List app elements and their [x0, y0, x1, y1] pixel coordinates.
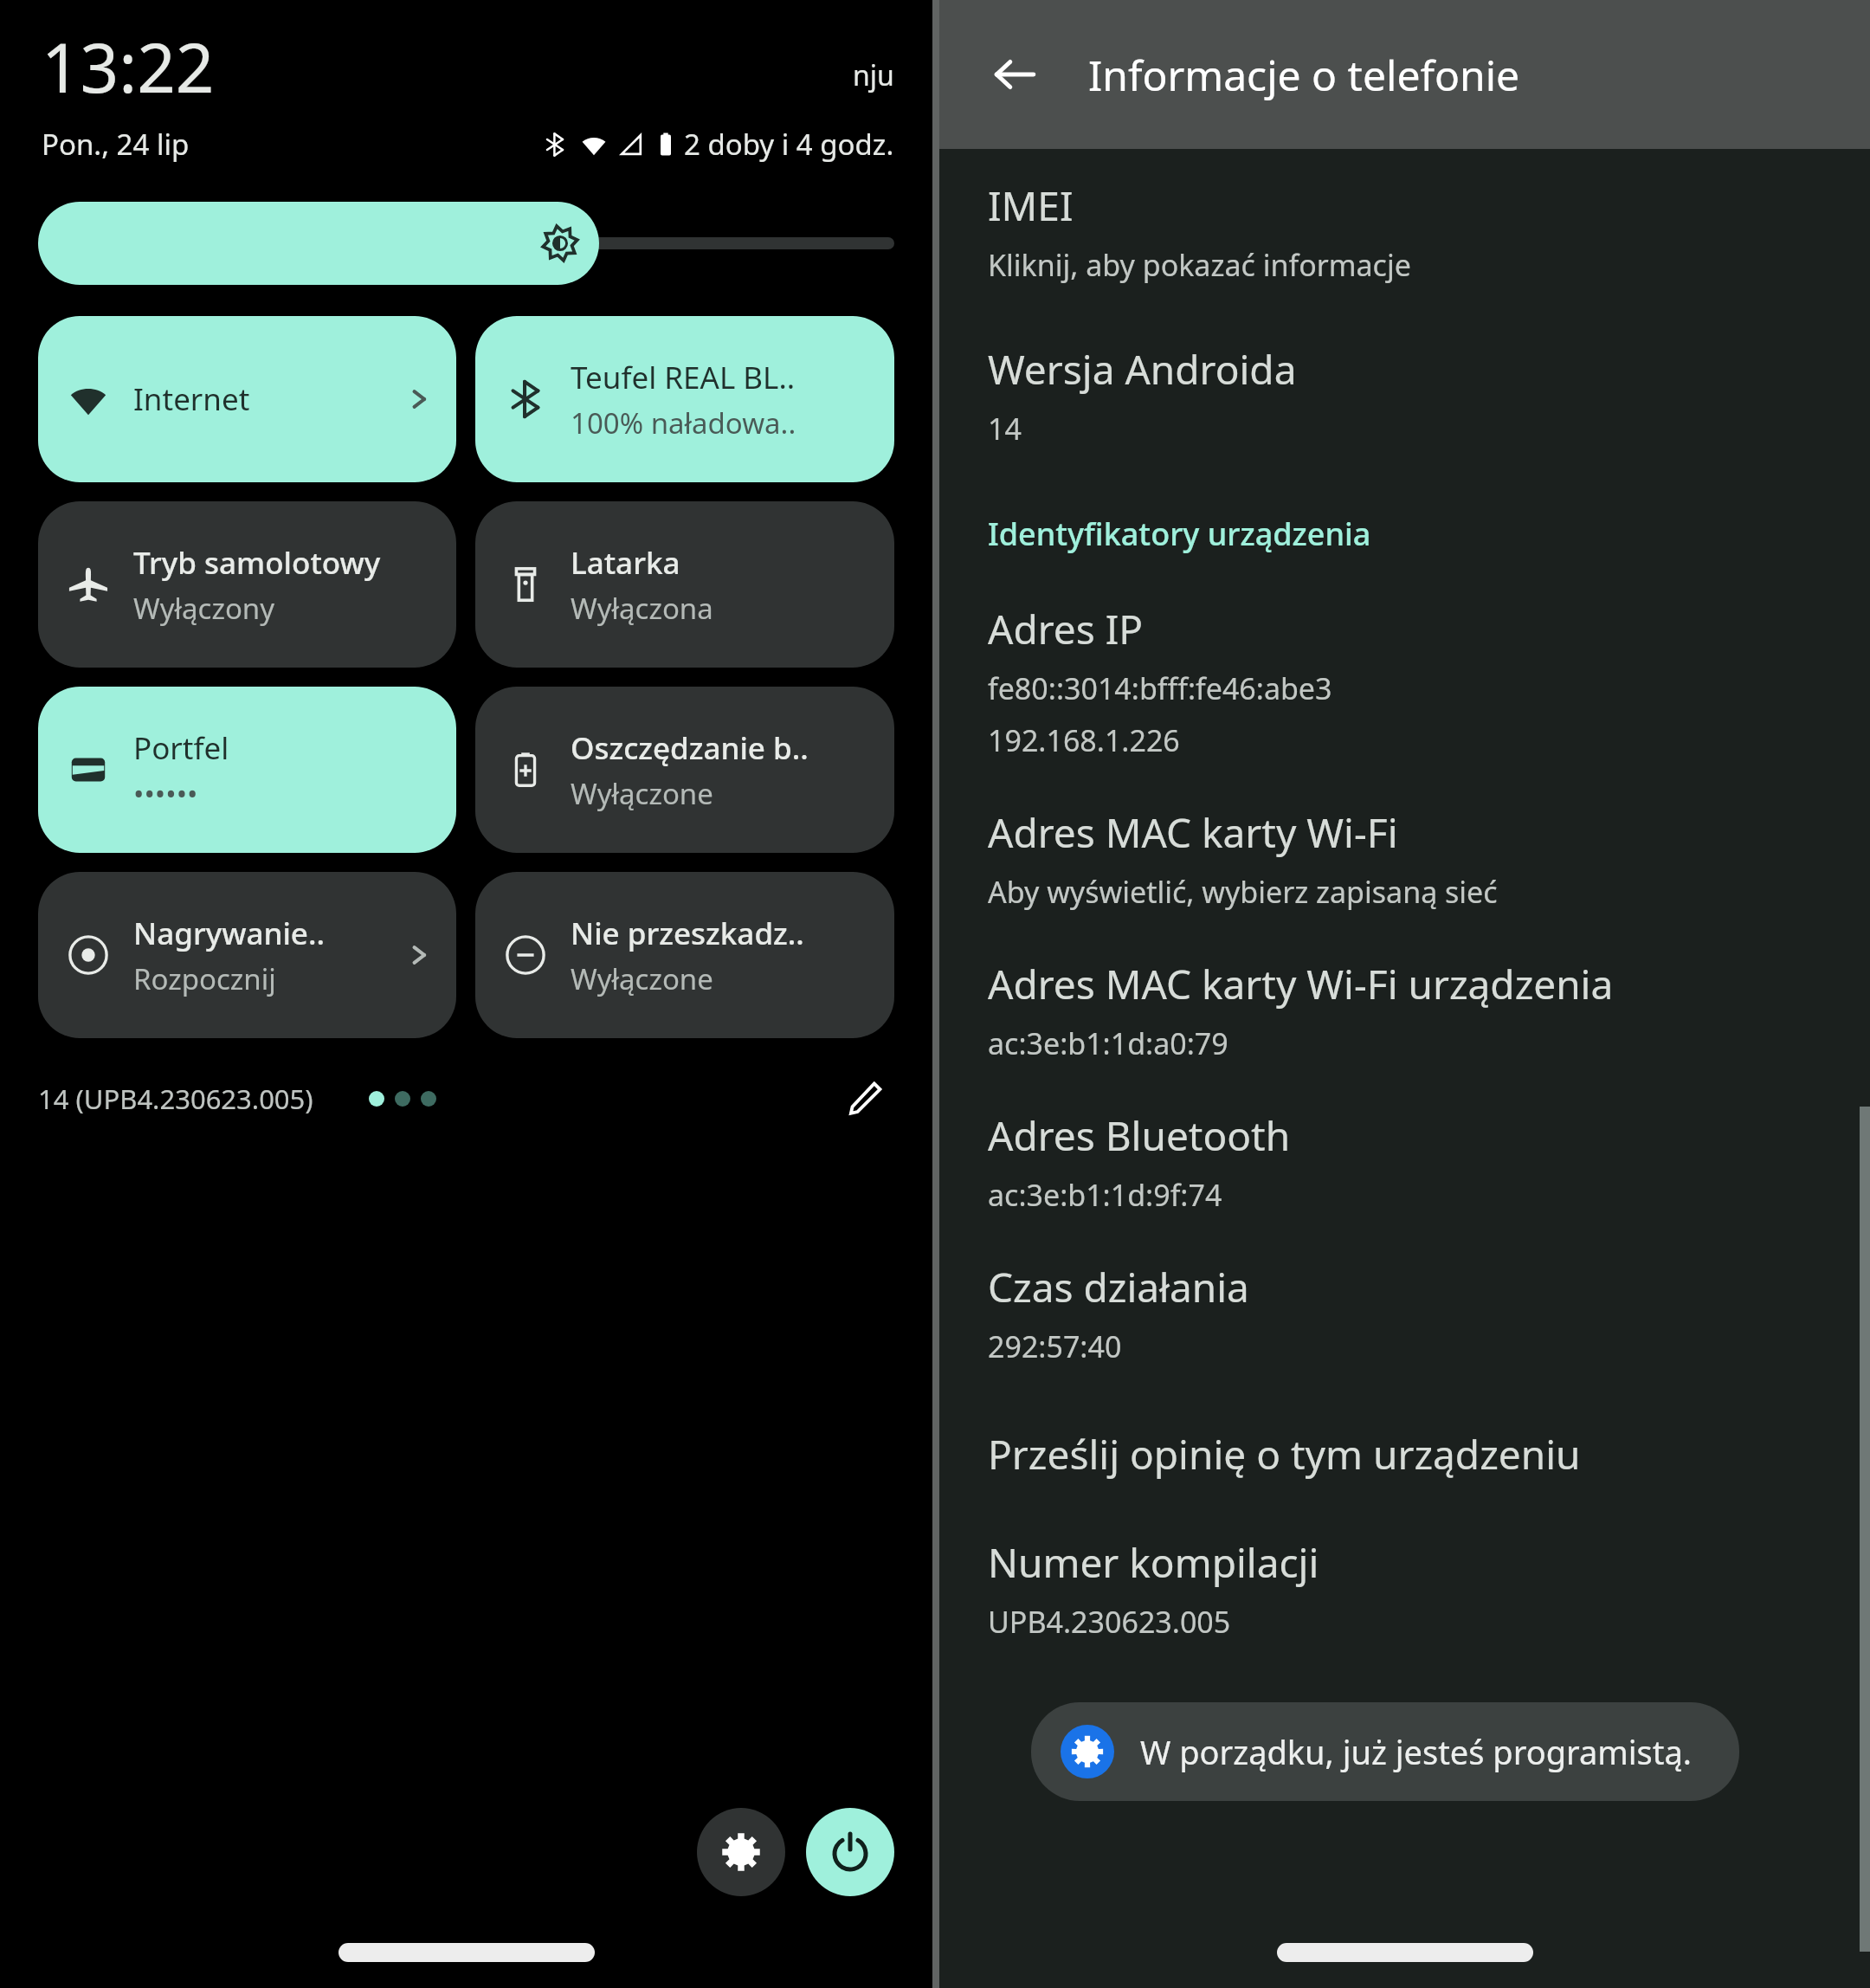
button[interactable]: Back [981, 41, 1048, 108]
staticText: 13:22 [42, 21, 215, 113]
staticText: Wersja Androida [988, 342, 1297, 397]
staticText: Aby wyświetlić, wybierz zapisaną sieć [988, 872, 1498, 912]
button[interactable]: Teufel REAL BL.. [475, 316, 894, 482]
staticText: IMEI [988, 178, 1074, 233]
staticText: Pon., 24 lip [42, 125, 190, 164]
staticText: •••••• [133, 774, 198, 813]
button[interactable]: Latarka [475, 501, 894, 668]
button[interactable] [38, 202, 894, 285]
staticText: Nagrywanie.. [133, 913, 325, 954]
button[interactable]: Adres IP [988, 602, 1835, 760]
button[interactable]: Nagrywanie.. [38, 872, 456, 1038]
staticText: Teufel REAL BL.. [571, 357, 796, 398]
button[interactable]: Oszczędzanie b.. [475, 687, 894, 853]
staticText: Oszczędzanie b.. [571, 727, 809, 769]
staticText: Informacje o telefonie [1088, 47, 1520, 103]
staticText: Nie przeszkadz.. [571, 913, 804, 954]
button[interactable]: Internet [38, 316, 456, 482]
button[interactable]: Czas działania [988, 1260, 1835, 1366]
button[interactable]: Numer kompilacji [988, 1535, 1835, 1642]
staticText: Wyłączone [571, 959, 713, 998]
staticText: 14 (UPB4.230623.005) [38, 1081, 313, 1117]
button[interactable]: Settings [697, 1808, 785, 1896]
staticText: Internet [133, 378, 250, 420]
button[interactable]: Portfel [38, 687, 456, 853]
staticText: fe80::3014:bfff:fe46:abe3 [988, 668, 1332, 708]
staticText: Numer kompilacji [988, 1535, 1319, 1590]
staticText: Prześlij opinię o tym urządzeniu [988, 1427, 1581, 1481]
staticText: 2 doby i 4 godz. [684, 125, 894, 164]
staticText: Wyłączona [571, 589, 713, 628]
staticText: Portfel [133, 727, 229, 769]
button[interactable]: Wersja Androida [988, 342, 1835, 449]
staticText: Czas działania [988, 1260, 1249, 1314]
staticText: Adres IP [988, 602, 1144, 656]
staticText: Adres MAC karty Wi-Fi urządzenia [988, 957, 1614, 1011]
staticText: Adres Bluetooth [988, 1108, 1291, 1163]
button[interactable]: Power [806, 1808, 894, 1896]
button[interactable]: Edit [834, 1068, 894, 1129]
staticText: nju [853, 56, 894, 94]
button[interactable]: IMEI [988, 178, 1835, 285]
button[interactable]: Adres Bluetooth [988, 1108, 1835, 1215]
button[interactable]: Nie przeszkadz.. [475, 872, 894, 1038]
staticText: ac:3e:b1:1d:a0:79 [988, 1023, 1228, 1063]
staticText: 292:57:40 [988, 1326, 1122, 1366]
staticText: ac:3e:b1:1d:9f:74 [988, 1175, 1222, 1215]
staticText: Wyłączony [133, 589, 275, 628]
staticText: Identyfikatory urządzenia [988, 513, 1371, 555]
button[interactable]: Adres MAC karty Wi-Fi [988, 805, 1835, 912]
staticText: 100% naładowa.. [571, 403, 796, 442]
button[interactable]: Tryb samolotowy [38, 501, 456, 668]
staticText: Kliknij, aby pokazać informacje [988, 245, 1411, 285]
staticText: Tryb samolotowy [133, 542, 381, 584]
staticText: Adres MAC karty Wi-Fi [988, 805, 1398, 860]
staticText: 192.168.1.226 [988, 720, 1180, 760]
button[interactable]: W porządku, już jesteś programistą. [1031, 1702, 1739, 1801]
button[interactable]: Adres MAC karty Wi-Fi urządzenia [988, 957, 1835, 1063]
staticText: Rozpocznij [133, 959, 276, 998]
staticText: W porządku, już jesteś programistą. [1140, 1729, 1693, 1774]
staticText: Wyłączone [571, 774, 713, 813]
staticText: UPB4.230623.005 [988, 1602, 1231, 1642]
staticText: Latarka [571, 542, 680, 584]
button[interactable]: Prześlij opinię o tym urządzeniu [988, 1427, 1835, 1481]
staticText: 14 [988, 409, 1022, 449]
